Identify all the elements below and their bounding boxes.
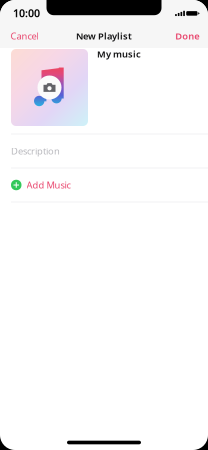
staticText: Done [175, 30, 199, 42]
staticText: New Playlist [76, 30, 132, 42]
staticText: Description [11, 145, 60, 157]
staticText: Cancel [10, 30, 38, 42]
button[interactable]: Description [0, 134, 208, 168]
button[interactable]: Cancel [4, 25, 44, 47]
button[interactable]: Done [169, 25, 205, 47]
staticText: My music [97, 48, 141, 60]
button[interactable]: Add Music [0, 168, 208, 201]
staticText: Add Music [26, 179, 70, 191]
button[interactable]: Choose playlist artwork [11, 49, 88, 126]
staticText: 10:00 [13, 6, 40, 20]
